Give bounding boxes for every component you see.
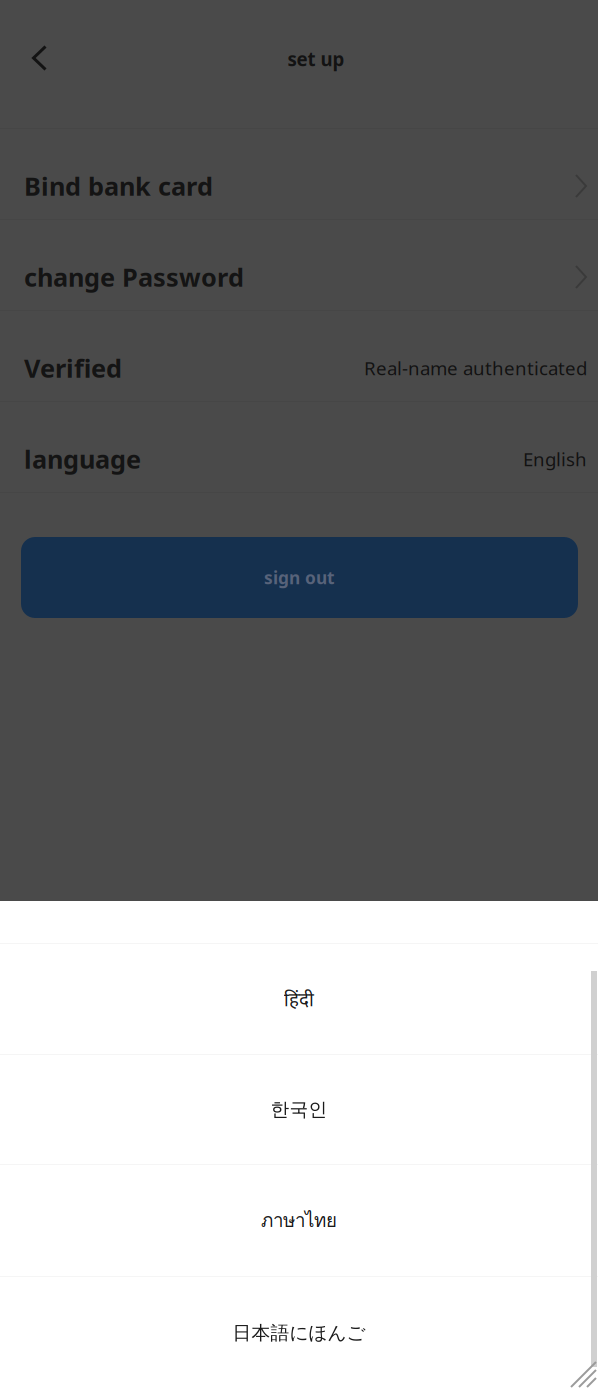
button[interactable]: change Password — [0, 220, 598, 310]
staticText: 日本語にほんご — [232, 1321, 365, 1344]
button[interactable]: 日本語にほんご — [0, 1277, 598, 1389]
button[interactable]: हिंदी — [0, 944, 598, 1054]
staticText: हिंदी — [284, 987, 314, 1011]
button[interactable]: ภาษาไทย — [0, 1165, 598, 1276]
staticText: change Password — [24, 260, 244, 294]
button[interactable]: 한국인 — [0, 1055, 598, 1164]
staticText: Bind bank card — [24, 169, 213, 203]
staticText: English — [523, 447, 587, 471]
staticText: ภาษาไทย — [261, 1206, 337, 1235]
button[interactable]: language — [0, 402, 598, 492]
button[interactable]: Bind bank card — [0, 129, 598, 219]
staticText: 한국인 — [270, 1098, 327, 1121]
button[interactable]: Back — [0, 0, 71, 128]
staticText: set up — [287, 47, 344, 71]
staticText: sign out — [264, 566, 335, 589]
staticText: Real-name authenticated — [364, 356, 587, 380]
staticText: Verified — [24, 351, 122, 385]
staticText: language — [24, 442, 141, 476]
button[interactable]: sign out — [21, 537, 578, 618]
button[interactable]: Verified — [0, 311, 598, 401]
